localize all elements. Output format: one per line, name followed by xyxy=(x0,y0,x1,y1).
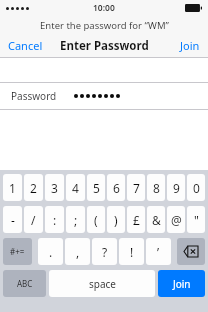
button[interactable]: space xyxy=(49,270,155,297)
button[interactable]: ; xyxy=(66,206,85,233)
staticText: #+= xyxy=(10,246,25,257)
staticText: ? xyxy=(102,244,108,260)
staticText: @ xyxy=(171,212,182,228)
button[interactable]: 3 xyxy=(45,174,64,201)
button[interactable]: 4 xyxy=(66,174,85,201)
staticText: Enter the password for “WM” xyxy=(40,19,169,32)
button[interactable]: / xyxy=(24,206,43,233)
staticText: Password xyxy=(11,89,57,103)
button[interactable]: 9 xyxy=(167,174,185,201)
staticText: ’ xyxy=(157,244,160,260)
button[interactable]: Backspace xyxy=(177,238,205,265)
staticText: 2 xyxy=(30,180,37,196)
staticText: 10:00 xyxy=(93,2,115,14)
button[interactable]: Cancel xyxy=(0,35,51,56)
button[interactable]: - xyxy=(3,206,22,233)
staticText: ( xyxy=(94,212,98,228)
staticText: 6 xyxy=(113,180,120,196)
button[interactable]: , xyxy=(65,238,90,265)
staticText: ; xyxy=(74,212,78,228)
staticText: Enter Password xyxy=(60,38,149,54)
staticText: ) xyxy=(114,212,118,228)
button[interactable]: " xyxy=(187,206,205,233)
button[interactable]: ’ xyxy=(146,238,171,265)
button[interactable]: : xyxy=(45,206,64,233)
staticText: ABC xyxy=(17,278,33,289)
button[interactable]: 7 xyxy=(127,174,145,201)
staticText: space xyxy=(89,277,116,291)
staticText: Join xyxy=(180,38,200,53)
staticText: / xyxy=(31,212,36,228)
staticText: , xyxy=(76,244,80,260)
button[interactable]: #+= xyxy=(3,238,32,265)
button[interactable]: 6 xyxy=(107,174,125,201)
button[interactable]: ! xyxy=(119,238,144,265)
staticText: 8 xyxy=(153,180,160,196)
button[interactable]: 1 xyxy=(3,174,22,201)
button[interactable]: 8 xyxy=(147,174,165,201)
staticText: 5 xyxy=(93,180,100,196)
button[interactable]: Join xyxy=(158,270,205,297)
staticText: - xyxy=(11,212,15,228)
staticText: " xyxy=(194,212,199,228)
button[interactable]: . xyxy=(38,238,63,265)
staticText: . xyxy=(49,244,53,260)
button[interactable]: & xyxy=(147,206,165,233)
staticText: ! xyxy=(130,244,134,260)
staticText: 9 xyxy=(173,180,180,196)
staticText: & xyxy=(152,212,161,228)
staticText: 1 xyxy=(9,180,16,196)
staticText: 7 xyxy=(133,180,140,196)
button[interactable]: 5 xyxy=(87,174,105,201)
staticText: : xyxy=(53,212,57,228)
button[interactable]: Join xyxy=(172,35,208,56)
button[interactable]: ? xyxy=(92,238,117,265)
staticText: 4 xyxy=(72,180,79,196)
button[interactable]: 2 xyxy=(24,174,43,201)
button[interactable]: ABC xyxy=(3,270,46,297)
button[interactable]: ) xyxy=(107,206,125,233)
button[interactable]: Password xyxy=(0,83,208,109)
button[interactable]: £ xyxy=(127,206,145,233)
button[interactable]: 0 xyxy=(187,174,205,201)
staticText: 0 xyxy=(193,180,200,196)
staticText: 3 xyxy=(51,180,58,196)
staticText: Cancel xyxy=(8,38,43,53)
button[interactable]: @ xyxy=(167,206,185,233)
staticText: Join xyxy=(173,277,191,291)
button[interactable]: ( xyxy=(87,206,105,233)
staticText: £ xyxy=(133,212,140,228)
